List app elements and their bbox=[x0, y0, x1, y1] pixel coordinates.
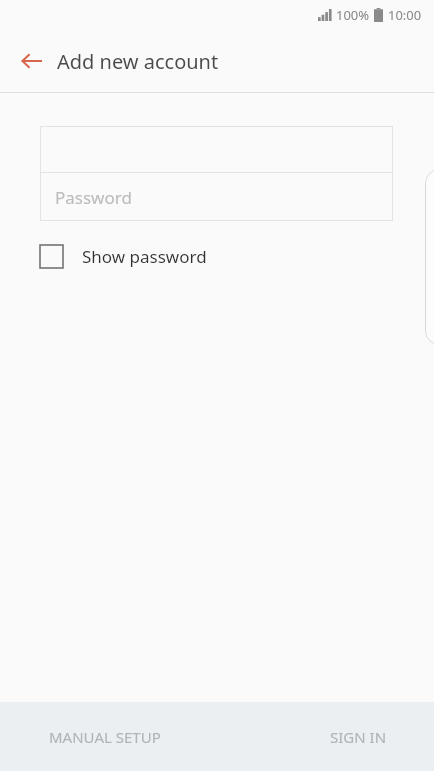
staticText: SIGN IN bbox=[330, 727, 387, 747]
staticText: Add new account bbox=[57, 48, 219, 75]
button[interactable]: Back bbox=[10, 39, 54, 83]
staticText: Password bbox=[55, 186, 132, 209]
staticText: 10:00 bbox=[388, 6, 422, 24]
button[interactable] bbox=[40, 126, 393, 172]
button[interactable]: Show password bbox=[40, 237, 207, 275]
button[interactable]: Password bbox=[40, 173, 393, 221]
staticText: Show password bbox=[82, 245, 207, 268]
staticText: MANUAL SETUP bbox=[49, 727, 161, 747]
button[interactable]: MANUAL SETUP bbox=[22, 713, 188, 761]
staticText: 100% bbox=[336, 6, 370, 24]
button[interactable]: SIGN IN bbox=[303, 713, 414, 761]
